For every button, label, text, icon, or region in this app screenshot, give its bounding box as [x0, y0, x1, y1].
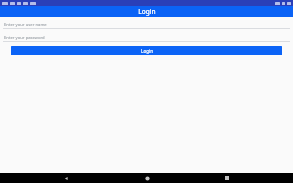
button[interactable]: Enter your user name: [3, 21, 290, 29]
staticText: Login: [138, 7, 156, 16]
staticText: Enter your password: [4, 35, 45, 41]
button[interactable]: Login: [11, 46, 282, 55]
button[interactable]: Recent apps: [213, 173, 241, 183]
button[interactable]: Home: [133, 173, 161, 183]
staticText: Login: [141, 48, 153, 54]
button[interactable]: Back: [52, 173, 80, 183]
staticText: Enter your user name: [4, 22, 47, 28]
button[interactable]: Enter your password: [3, 34, 290, 42]
